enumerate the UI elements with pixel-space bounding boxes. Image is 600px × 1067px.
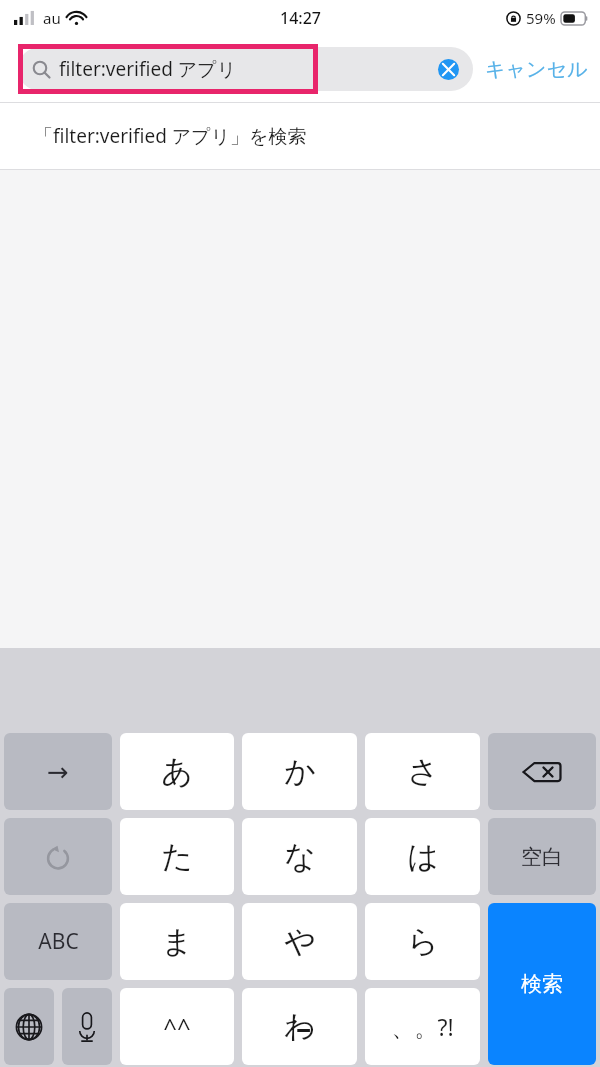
button[interactable]: は [365,818,480,895]
button[interactable]: 、。?! [365,988,480,1065]
staticText: さ [407,752,439,791]
button[interactable]: ^^ [120,988,234,1065]
staticText: は [407,837,439,876]
staticText: ら [407,922,439,961]
button[interactable]: ま [120,903,234,980]
staticText: 、。?! [391,1011,454,1042]
button[interactable]: た [120,818,234,895]
button[interactable]: 検索テキストを消去 [433,54,463,84]
staticText: か [284,752,316,791]
button[interactable]: あ [120,733,234,810]
staticText: 「filter:verified アプリ」を検索 [34,123,307,149]
staticText: キャンセル [485,57,588,82]
button[interactable]: 空白 [488,818,596,895]
button[interactable]: ら [365,903,480,980]
staticText: au [43,8,61,28]
button[interactable]: キーボードを切り替え [4,988,54,1065]
button[interactable]: ABC入力に切替 [4,903,112,980]
staticText: 59% [526,8,556,28]
staticText: 検索 [521,971,563,997]
staticText: わ [284,1007,316,1046]
button[interactable]: カーソル移動 [4,733,112,810]
staticText: 空白 [521,844,563,870]
staticText: ま [161,922,193,961]
staticText: 14:27 [280,7,321,29]
staticText: た [161,837,193,876]
button[interactable]: 音声入力 [62,988,112,1065]
staticText: ^^ [163,1010,191,1043]
button[interactable]: わ [242,988,357,1065]
button[interactable]: 取り消し [4,818,112,895]
staticText: あ [161,752,193,791]
button[interactable]: 検索 [488,903,596,1065]
button[interactable]: キャンセル [485,57,588,82]
staticText: → [47,757,69,787]
button[interactable]: な [242,818,357,895]
button[interactable]: filter:verified アプリ [18,47,473,91]
staticText: ABC [38,927,79,956]
button[interactable]: さ [365,733,480,810]
button[interactable]: や [242,903,357,980]
staticText: な [284,837,316,876]
staticText: や [284,922,316,961]
button[interactable]: 「filter:verified アプリ」を検索 [0,103,600,169]
button[interactable]: か [242,733,357,810]
button[interactable]: 削除 [488,733,596,810]
staticText: filter:verified アプリ [59,56,237,82]
